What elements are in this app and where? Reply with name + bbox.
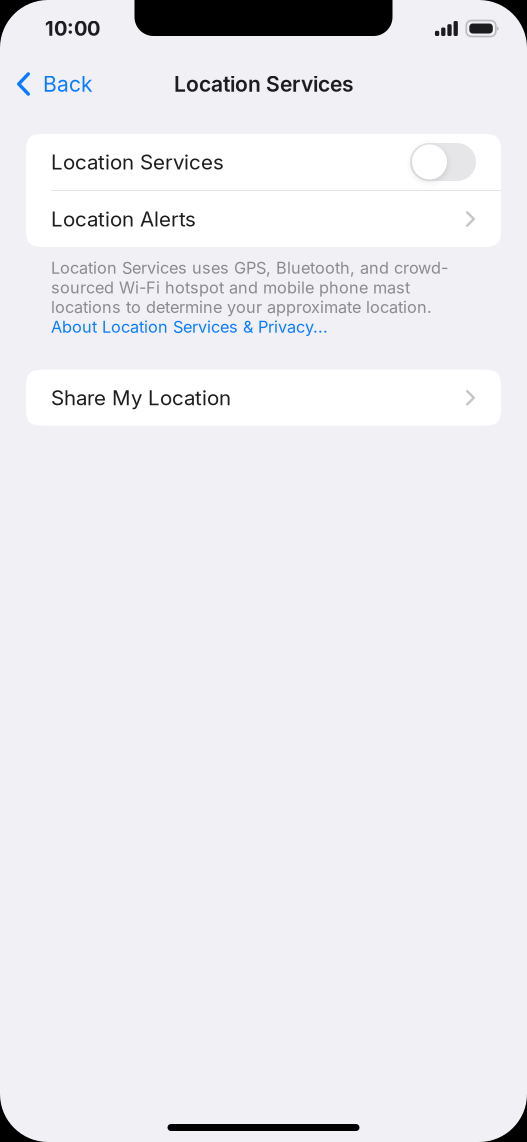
staticText: Location Services — [174, 71, 353, 97]
button[interactable]: Back — [0, 63, 102, 105]
button[interactable]: About Location Services & Privacy... — [51, 317, 328, 337]
staticText: 10:00 — [45, 16, 100, 41]
button[interactable]: Share My Location — [26, 370, 501, 426]
staticText: Back — [43, 71, 92, 97]
staticText: About Location Services & Privacy... — [51, 317, 328, 337]
button[interactable]: Location Alerts — [26, 191, 501, 247]
staticText: Location Services — [51, 150, 224, 174]
button[interactable]: Location Services — [26, 134, 501, 190]
staticText: Location Services uses GPS, Bluetooth, a… — [51, 258, 448, 317]
staticText: Share My Location — [51, 385, 231, 410]
staticText: Location Alerts — [51, 207, 196, 231]
